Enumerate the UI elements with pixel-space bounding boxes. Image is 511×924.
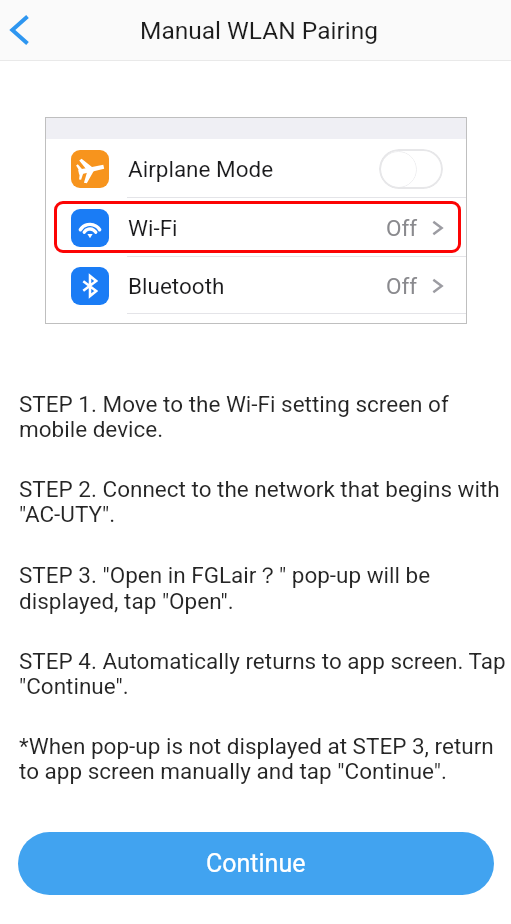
staticText: Off: [386, 273, 418, 299]
button[interactable]: Continue: [18, 832, 494, 895]
staticText: Off: [386, 215, 418, 241]
staticText: Manual WLAN Pairing: [140, 16, 378, 45]
button[interactable]: Wi-Fi: [45, 198, 467, 257]
staticText: *When pop-up is not displayed at STEP 3,…: [19, 733, 494, 785]
staticText: Wi-Fi: [128, 215, 178, 241]
staticText: Continue: [206, 849, 306, 878]
button[interactable]: Airplane Mode: [45, 139, 467, 198]
staticText: STEP 1. Move to the Wi-Fi setting screen…: [19, 391, 449, 443]
button[interactable]: Back: [0, 8, 44, 52]
staticText: Bluetooth: [128, 273, 225, 299]
staticText: Airplane Mode: [128, 156, 274, 182]
button[interactable]: Bluetooth: [45, 257, 467, 314]
staticText: STEP 4. Automatically returns to app scr…: [19, 648, 506, 700]
staticText: STEP 2. Connect to the network that begi…: [19, 476, 500, 528]
staticText: STEP 3. "Open in FGLair？" pop-up will be…: [19, 561, 431, 615]
